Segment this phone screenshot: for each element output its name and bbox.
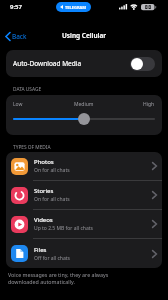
staticText: Using Cellular xyxy=(62,31,107,40)
button[interactable]: Auto-Download Media xyxy=(13,50,155,77)
button[interactable]: Stories xyxy=(11,181,157,209)
button[interactable]: Photos xyxy=(11,152,157,180)
staticText: TYPES OF MEDIA xyxy=(13,144,51,151)
button[interactable]: Files xyxy=(11,239,157,268)
button[interactable]: Videos xyxy=(11,210,157,238)
staticText: Back xyxy=(12,32,27,41)
button[interactable]: Back xyxy=(5,32,27,41)
staticText: Medium xyxy=(74,101,94,108)
staticText: Photos xyxy=(34,158,54,166)
button[interactable] xyxy=(6,95,162,135)
staticText: Files xyxy=(34,246,47,254)
staticText: On for all chats xyxy=(34,196,70,203)
staticText: Off for all chats xyxy=(34,255,70,262)
staticText: 9:57 xyxy=(10,3,22,11)
staticText: Videos xyxy=(34,216,53,224)
staticText: Stories xyxy=(34,187,54,195)
staticText: Auto-Download Media xyxy=(13,59,82,68)
staticText: Up to 2.5 MB for all chats xyxy=(34,225,93,232)
staticText: Low xyxy=(13,101,23,108)
staticText: Voice messages are tiny, they are always xyxy=(8,271,109,278)
staticText: DATA USAGE xyxy=(13,86,42,93)
button[interactable]: TELEGRAM xyxy=(60,2,87,12)
staticText: On for all chats xyxy=(34,167,70,174)
staticText: High xyxy=(143,101,155,108)
staticText: downloaded automatically. xyxy=(8,278,75,285)
staticText: TELEGRAM xyxy=(65,5,87,10)
